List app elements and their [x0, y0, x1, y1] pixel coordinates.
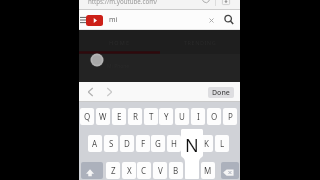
- staticText: R: [133, 111, 138, 122]
- staticText: P: [228, 111, 233, 122]
- button[interactable]: [81, 162, 103, 179]
- other: Shift: [81, 162, 103, 179]
- staticText: Y: [164, 111, 169, 122]
- button[interactable]: Search: [223, 14, 235, 26]
- button[interactable]: Menu: [80, 16, 86, 24]
- button[interactable]: O: [207, 108, 221, 125]
- staticText: S: [109, 138, 114, 149]
- button[interactable]: I: [191, 108, 205, 125]
- button[interactable]: E: [112, 108, 126, 125]
- staticText: C: [141, 165, 147, 176]
- staticText: mi: [109, 15, 118, 25]
- button[interactable]: A: [88, 135, 102, 152]
- staticText: N: [185, 133, 199, 158]
- staticText: J: [189, 138, 192, 149]
- staticText: Done: [212, 88, 230, 98]
- button[interactable]: T: [144, 108, 158, 125]
- button[interactable]: Done: [208, 87, 234, 98]
- staticText: X: [127, 165, 132, 176]
- staticText: G: [155, 138, 161, 149]
- staticText: F: [141, 138, 146, 149]
- staticText: E: [117, 111, 122, 122]
- other: Backspace: [221, 162, 239, 179]
- staticText: O: [211, 111, 218, 122]
- button[interactable]: F: [136, 135, 150, 152]
- button[interactable]: R: [128, 108, 142, 125]
- button[interactable]: U: [175, 108, 189, 125]
- button[interactable]: TRENDING: [160, 35, 241, 49]
- button[interactable]: V: [153, 162, 167, 179]
- staticText: I: [197, 111, 200, 122]
- staticText: Z: [111, 165, 116, 176]
- staticText: U: [179, 111, 185, 122]
- staticText: K: [204, 138, 209, 149]
- staticText: M: [204, 165, 212, 176]
- button[interactable]: M: [201, 162, 215, 179]
- staticText: T: [149, 111, 154, 122]
- button[interactable]: L: [215, 135, 229, 152]
- button[interactable]: D: [120, 135, 134, 152]
- staticText: W: [99, 111, 107, 122]
- button[interactable]: P: [223, 108, 237, 125]
- button[interactable]: G: [151, 135, 165, 152]
- staticText: H: [171, 138, 177, 149]
- button[interactable]: X: [122, 162, 136, 179]
- button[interactable]: Reload: [198, 0, 214, 4]
- button[interactable]: Y: [159, 108, 173, 125]
- button[interactable]: H: [167, 135, 181, 152]
- staticText: https://m.youtube.com/: [88, 0, 158, 5]
- button[interactable]: Previous field: [87, 87, 94, 97]
- staticText: B: [173, 165, 179, 176]
- button[interactable]: S: [104, 135, 118, 152]
- button[interactable]: Clear search: [209, 18, 214, 23]
- staticText: L: [220, 138, 225, 149]
- button[interactable]: [86, 15, 103, 26]
- staticText: D: [124, 138, 130, 149]
- staticText: A: [92, 138, 98, 149]
- button[interactable]: K: [199, 135, 213, 152]
- button[interactable]: Downloads: [221, 0, 231, 6]
- button[interactable]: Next field: [106, 87, 113, 97]
- button[interactable]: J: [183, 135, 197, 152]
- button[interactable]: Z: [106, 162, 120, 179]
- button[interactable]: [221, 162, 239, 179]
- staticText: V: [158, 165, 163, 176]
- button[interactable]: W: [96, 108, 110, 125]
- button[interactable]: Q: [80, 108, 94, 125]
- staticText: Q: [84, 111, 91, 122]
- button[interactable]: B: [169, 162, 183, 179]
- button[interactable]: C: [137, 162, 151, 179]
